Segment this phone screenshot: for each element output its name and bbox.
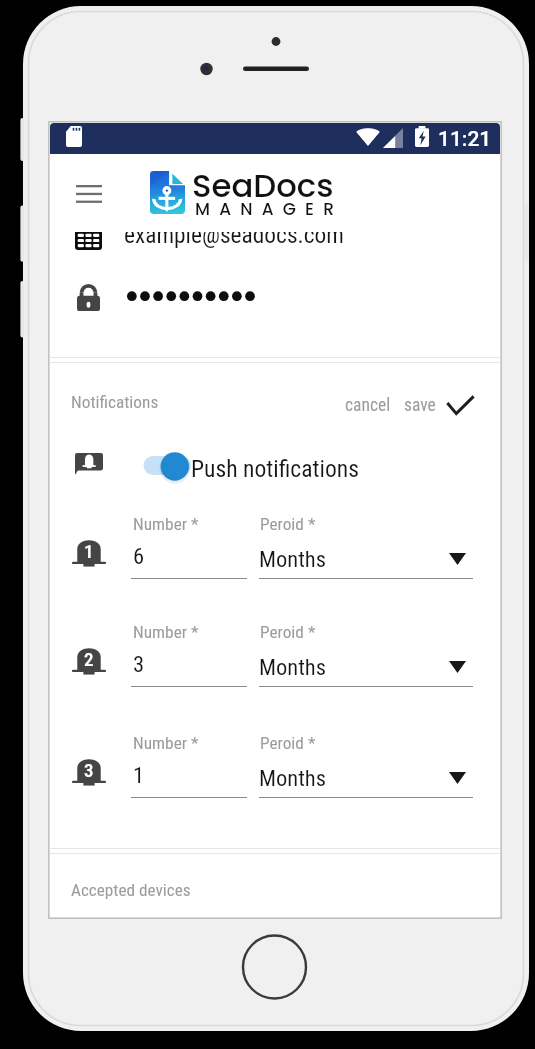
button[interactable]: Months	[259, 756, 473, 790]
staticText: example@seadocs.com	[124, 221, 344, 248]
staticText: Months	[259, 546, 326, 572]
staticText: Number *	[133, 514, 199, 534]
button[interactable]: Apply changes	[440, 391, 481, 419]
button[interactable]: Months	[259, 537, 473, 571]
staticText: Months	[259, 654, 326, 680]
button[interactable]: save	[403, 390, 437, 420]
staticText: Peroid *	[260, 733, 316, 753]
staticText: Peroid *	[260, 514, 316, 534]
staticText: Number *	[133, 733, 199, 753]
staticText: 2	[84, 648, 94, 670]
button[interactable]: Open navigation menu	[63, 168, 114, 219]
staticText: Number *	[133, 622, 199, 642]
staticText: Accepted devices	[71, 880, 191, 900]
staticText: Peroid *	[260, 622, 316, 642]
staticText: Months	[259, 765, 326, 791]
button[interactable]: cancel	[344, 390, 392, 420]
button[interactable]: Months	[259, 645, 473, 679]
button[interactable]: Push notifications	[60, 445, 380, 489]
staticText: Notifications	[71, 392, 159, 412]
staticText: 11:21	[438, 127, 492, 152]
staticText: 1	[84, 540, 94, 562]
staticText: 3	[84, 759, 94, 781]
staticText: cancel	[345, 395, 391, 416]
staticText: 1	[133, 762, 145, 788]
staticText: MANAGER	[195, 197, 344, 221]
staticText: save	[404, 395, 436, 416]
staticText: SeaDocs	[192, 163, 334, 208]
staticText: 3	[133, 651, 145, 677]
staticText: Push notifications	[191, 455, 359, 483]
staticText: 6	[133, 543, 145, 569]
